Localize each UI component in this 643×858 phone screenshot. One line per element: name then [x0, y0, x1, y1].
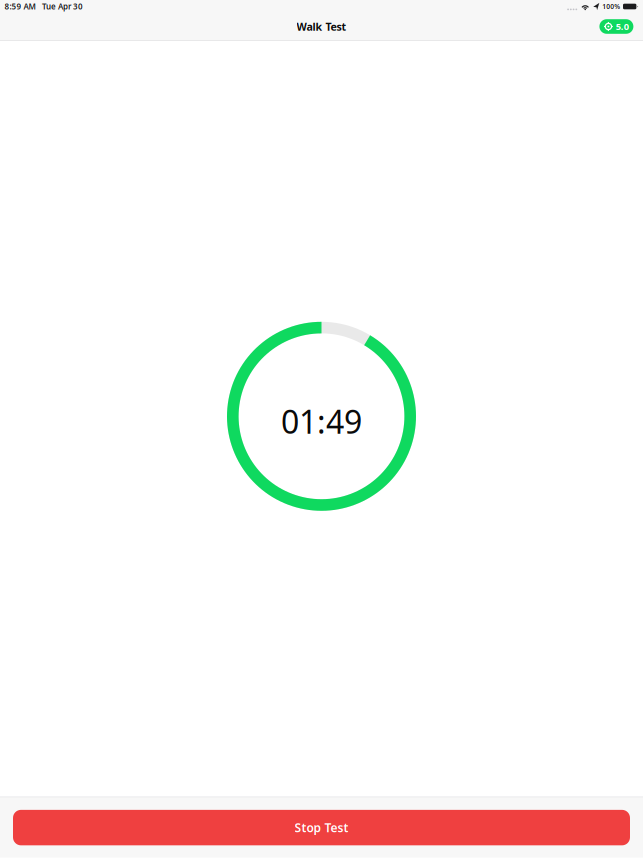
staticText: 100% [602, 2, 620, 11]
staticText: Tue Apr 30 [42, 1, 83, 12]
staticText: 01:49 [281, 400, 362, 443]
staticText: Stop Test [294, 820, 348, 835]
button[interactable]: GPS accuracy 5.0 meters [599, 19, 633, 34]
staticText: 5.0 [616, 20, 629, 33]
staticText: 8:59 AM [4, 1, 35, 12]
staticText: Walk Test [296, 19, 346, 34]
button[interactable]: Stop Test [13, 810, 630, 845]
